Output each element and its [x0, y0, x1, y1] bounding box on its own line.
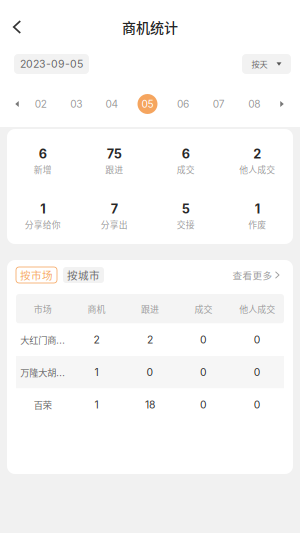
staticText: 1 — [94, 398, 98, 411]
button[interactable]: 按市场 — [16, 267, 57, 283]
button[interactable]: 05 — [130, 94, 165, 114]
staticText: 大红门商... — [20, 333, 65, 346]
staticText: 0 — [254, 333, 261, 346]
staticText: 分享给你 — [25, 218, 61, 231]
staticText: 0 — [200, 366, 207, 379]
staticText: 作废 — [248, 218, 266, 231]
staticText: 成交 — [195, 302, 213, 315]
staticText: 交接 — [177, 218, 195, 231]
staticText: 1 — [94, 366, 98, 379]
staticText: 商机 — [87, 302, 105, 315]
button[interactable]: 2023-09-05 — [14, 54, 89, 74]
staticText: 2023-09-05 — [20, 58, 83, 70]
staticText: 6 — [39, 146, 47, 162]
staticText: 07 — [213, 98, 225, 110]
staticText: 按市场 — [20, 267, 53, 283]
button[interactable]: 查看更多 — [232, 267, 279, 283]
staticText: 75 — [107, 146, 122, 162]
staticText: 按天 — [251, 58, 267, 70]
button[interactable]: 按天 — [242, 54, 291, 74]
button[interactable]: Previous days — [6, 94, 28, 114]
staticText: 02 — [35, 98, 47, 110]
staticText: 06 — [177, 98, 189, 110]
staticText: 商机统计 — [122, 17, 178, 37]
button[interactable]: 04 — [94, 94, 130, 114]
button[interactable]: 03 — [59, 94, 94, 114]
button[interactable]: 08 — [236, 94, 272, 114]
button[interactable]: 02 — [23, 94, 59, 114]
staticText: 0 — [254, 366, 261, 379]
staticText: 03 — [70, 98, 82, 110]
button[interactable]: Next days — [271, 94, 293, 114]
staticText: 04 — [105, 98, 118, 110]
button[interactable]: 07 — [201, 94, 236, 114]
staticText: 按城市 — [67, 267, 100, 283]
staticText: 7 — [111, 201, 118, 217]
staticText: 0 — [200, 398, 207, 411]
staticText: 0 — [254, 398, 261, 411]
staticText: 他人成交 — [239, 302, 275, 315]
staticText: 百荣 — [34, 398, 52, 411]
button[interactable]: Back — [0, 10, 34, 44]
staticText: 万隆大胡... — [20, 366, 65, 379]
staticText: 0 — [200, 333, 207, 346]
staticText: 05 — [141, 98, 153, 110]
staticText: 2 — [93, 333, 99, 346]
staticText: 1 — [40, 201, 45, 217]
staticText: 查看更多 — [232, 268, 272, 282]
staticText: 5 — [182, 201, 190, 217]
staticText: 6 — [182, 146, 190, 162]
staticText: 08 — [248, 98, 260, 110]
button[interactable]: 按城市 — [63, 267, 104, 283]
staticText: 成交 — [177, 163, 195, 176]
staticText: 18 — [145, 398, 155, 411]
staticText: 2 — [147, 333, 153, 346]
staticText: 市场 — [34, 302, 52, 315]
staticText: 他人成交 — [239, 163, 275, 176]
staticText: 跟进 — [105, 163, 123, 176]
staticText: 1 — [255, 201, 260, 217]
staticText: 跟进 — [141, 302, 159, 315]
staticText: 新增 — [34, 163, 52, 176]
staticText: 0 — [146, 366, 153, 379]
button[interactable]: 06 — [165, 94, 201, 114]
staticText: 2 — [253, 146, 261, 162]
staticText: 分享出 — [101, 218, 128, 231]
